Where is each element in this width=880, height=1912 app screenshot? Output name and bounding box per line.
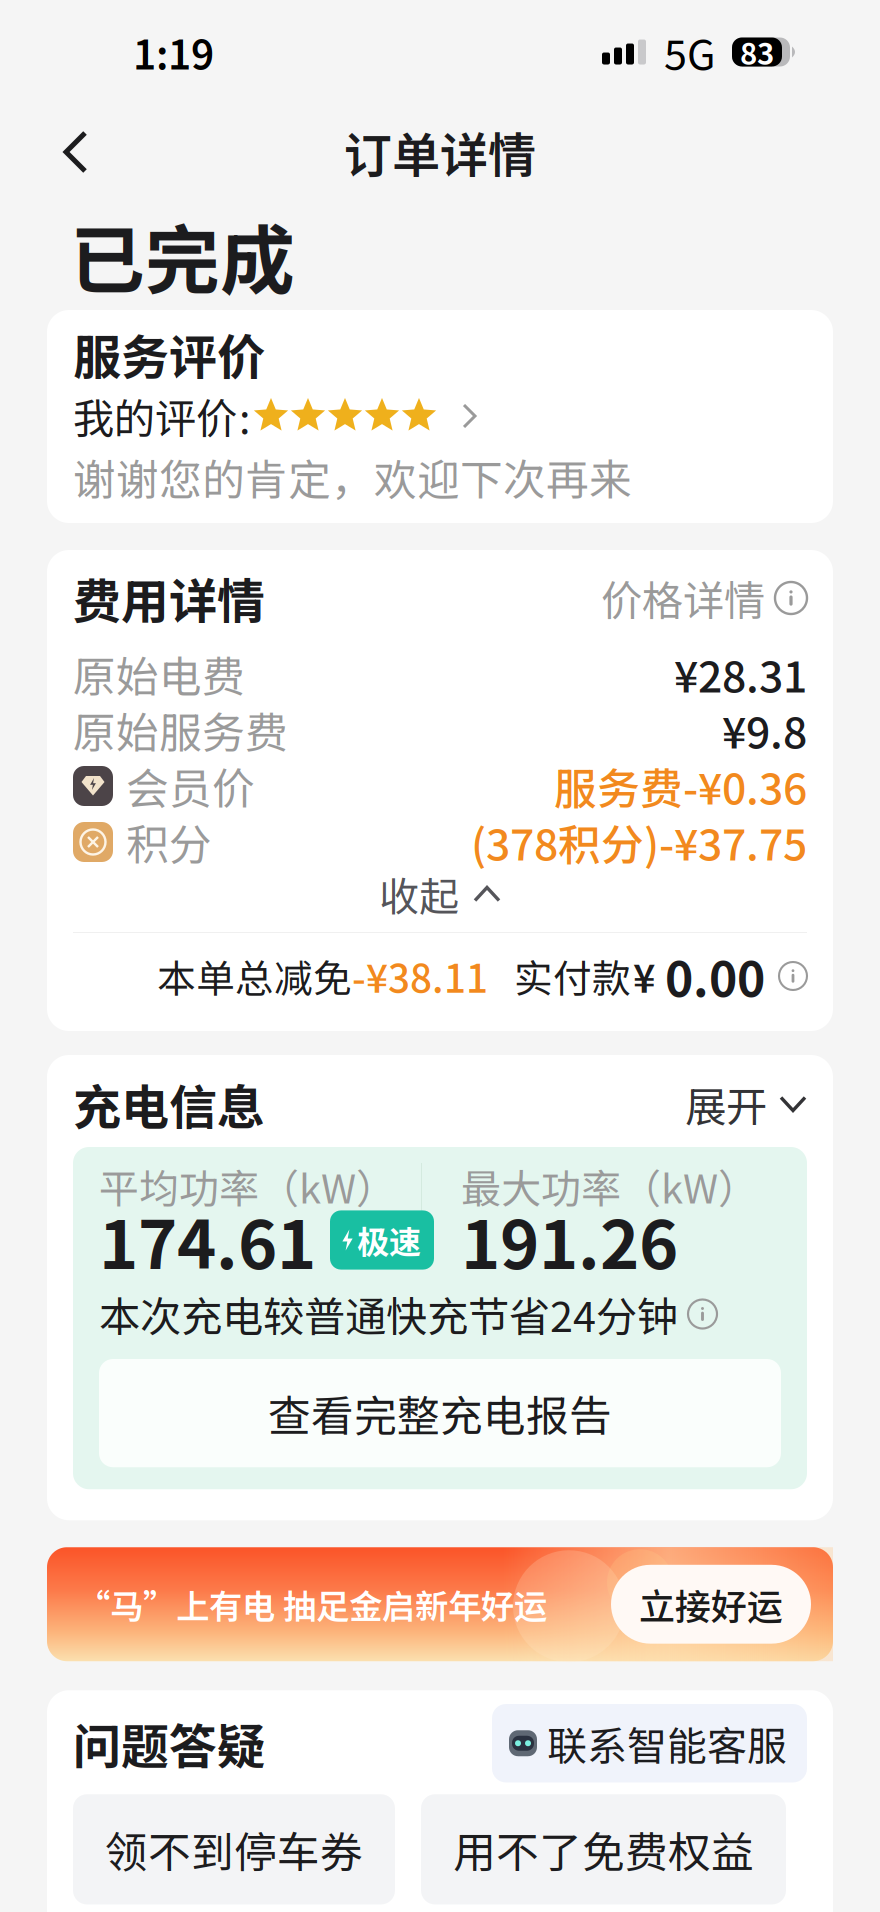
- staticText: 收起: [379, 866, 459, 922]
- button[interactable]: 领不到停车券: [73, 1794, 395, 1904]
- button[interactable]: 联系智能客服: [492, 1704, 807, 1782]
- staticText: :: [239, 387, 250, 445]
- staticText: 已完成: [70, 202, 295, 308]
- staticText: ¥28.31: [674, 644, 807, 704]
- staticText: 平均功率（kW）: [99, 1158, 396, 1214]
- staticText: 立接好运: [639, 1579, 783, 1630]
- staticText: 问题答疑: [73, 1709, 265, 1777]
- staticText: “马”上有电 抽足金启新年好运: [77, 1581, 547, 1628]
- button[interactable]: 我的评价: [73, 380, 807, 452]
- staticText: 订单详情: [344, 118, 536, 186]
- staticText: 领不到停车券: [105, 1819, 363, 1879]
- staticText: ¥: [633, 949, 655, 1003]
- staticText: 服务费-¥0.36: [554, 756, 807, 816]
- staticText: 191.26: [461, 1193, 678, 1287]
- button[interactable]: 返回: [40, 116, 112, 188]
- staticText: 5G: [664, 23, 715, 81]
- staticText: 1:19: [133, 24, 214, 80]
- staticText: 充电信息: [73, 1070, 265, 1138]
- staticText: 价格详情: [601, 569, 765, 627]
- staticText: 服务评价: [73, 320, 265, 388]
- button[interactable]: 用不了免费权益: [421, 1794, 786, 1904]
- button[interactable]: “马”上有电 抽足金启新年好运: [47, 1547, 833, 1661]
- staticText: 174.61: [99, 1193, 316, 1287]
- button[interactable]: 展开: [685, 1075, 807, 1133]
- staticText: 费用详情: [73, 564, 265, 632]
- staticText: 联系智能客服: [547, 1715, 787, 1771]
- staticText: 最大功率（kW）: [461, 1158, 758, 1214]
- button[interactable]: 收起: [73, 870, 807, 918]
- staticText: 极速: [357, 1217, 421, 1263]
- staticText: 83: [740, 31, 774, 73]
- staticText: 积分: [126, 812, 212, 872]
- staticText: 展开: [685, 1075, 767, 1133]
- staticText: 查看完整充电报告: [268, 1383, 612, 1443]
- staticText: -¥38.11: [352, 949, 488, 1003]
- staticText: 谢谢您的肯定，欢迎下次再来: [73, 447, 632, 507]
- staticText: 会员价: [126, 756, 255, 816]
- staticText: 本次充电较普通快充节省24分钟: [99, 1285, 678, 1343]
- staticText: 用不了免费权益: [453, 1819, 754, 1879]
- button[interactable]: 查看完整充电报告: [99, 1359, 781, 1467]
- staticText: 原始电费: [73, 644, 245, 704]
- staticText: (378积分)-¥37.75: [471, 812, 807, 872]
- staticText: 原始服务费: [73, 700, 288, 760]
- button[interactable]: 价格详情: [601, 569, 807, 627]
- staticText: 本单总减免: [157, 949, 352, 1003]
- staticText: 我的评价: [73, 387, 237, 445]
- staticText: 实付款: [514, 949, 631, 1003]
- staticText: ¥9.8: [722, 700, 807, 760]
- staticText: 0.00: [665, 942, 765, 1010]
